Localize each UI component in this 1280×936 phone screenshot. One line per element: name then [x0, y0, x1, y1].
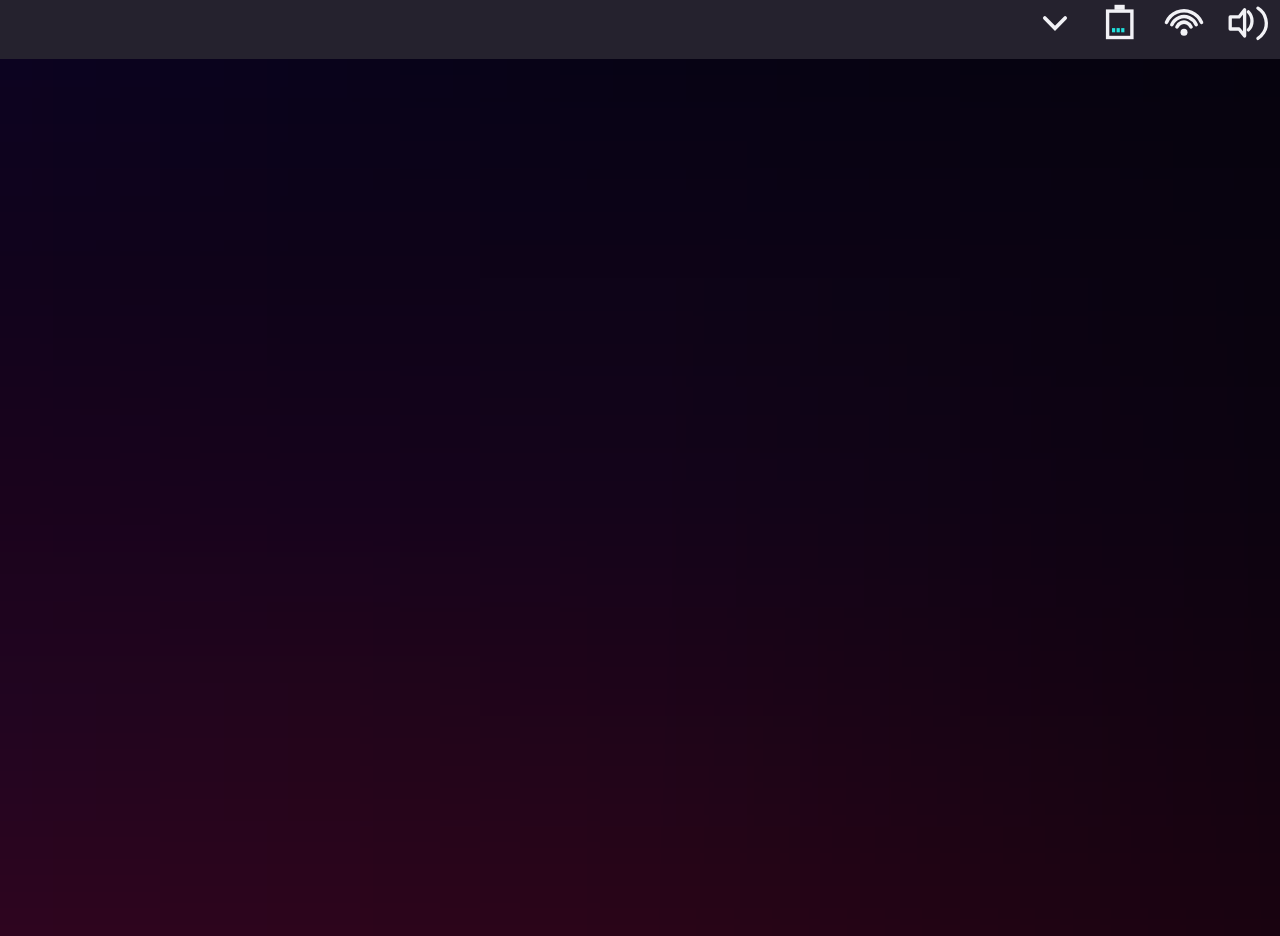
button[interactable]: Expand quick settings [1024, 0, 1088, 59]
button[interactable]: Battery low [1088, 0, 1152, 59]
button[interactable]: Home screen wallpaper [0, 59, 1280, 936]
button[interactable]: Wi-Fi connected [1152, 0, 1216, 59]
button[interactable]: Volume [1216, 0, 1280, 59]
